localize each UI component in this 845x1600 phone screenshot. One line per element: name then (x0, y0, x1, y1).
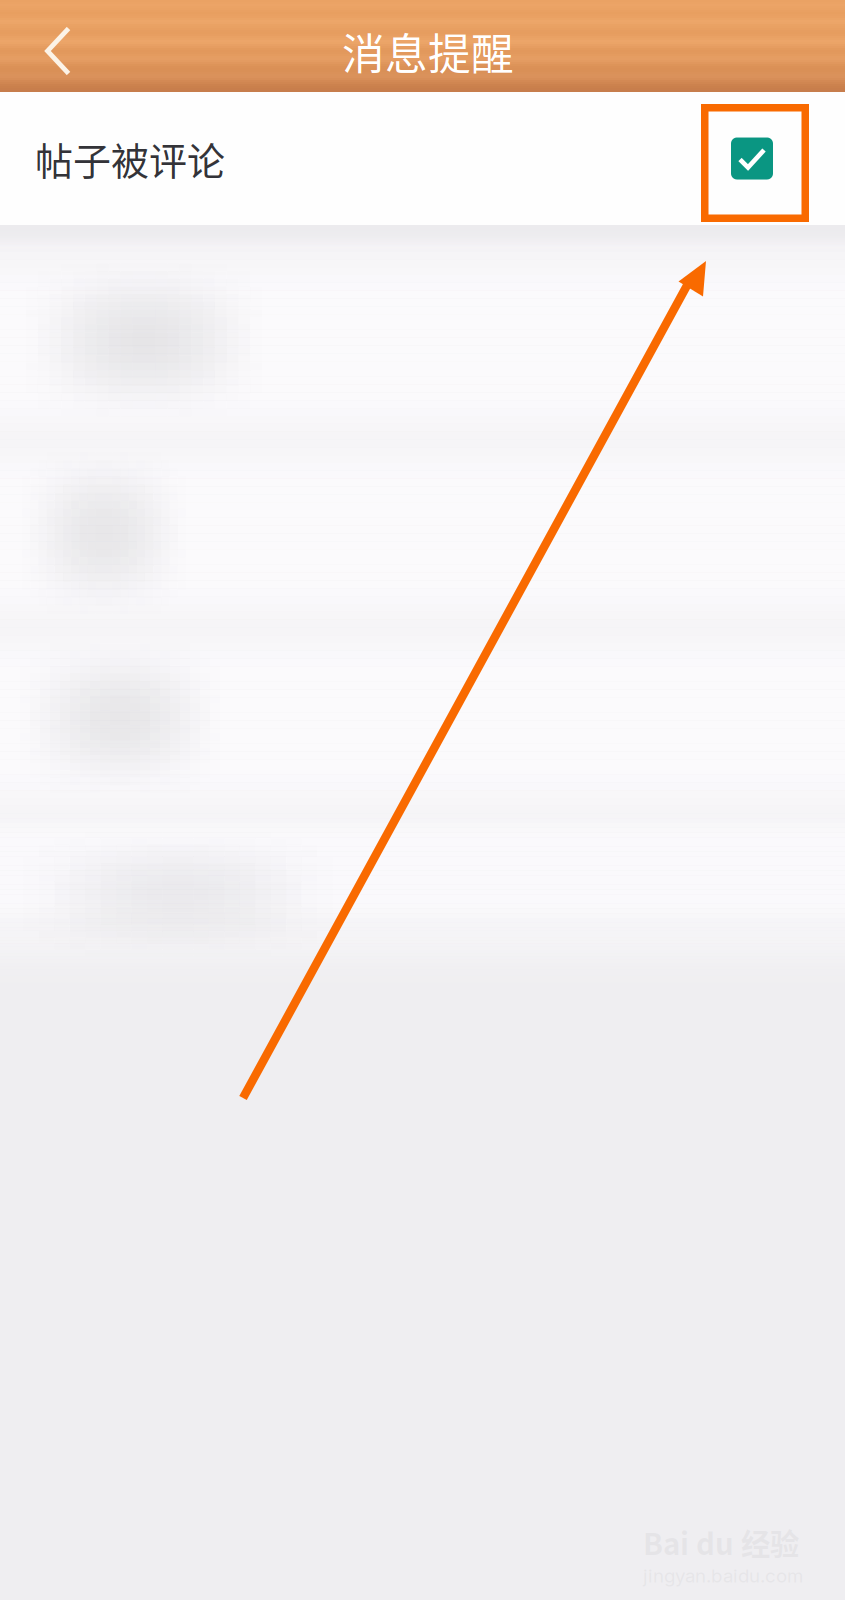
staticText: 消息提醒 (342, 21, 514, 82)
button[interactable]: Back (0, 0, 89, 92)
staticText: 帖子被评论 (35, 131, 225, 186)
staticText: Bai du 经验 (643, 1521, 799, 1563)
button[interactable]: 帖子被评论 (0, 92, 845, 225)
